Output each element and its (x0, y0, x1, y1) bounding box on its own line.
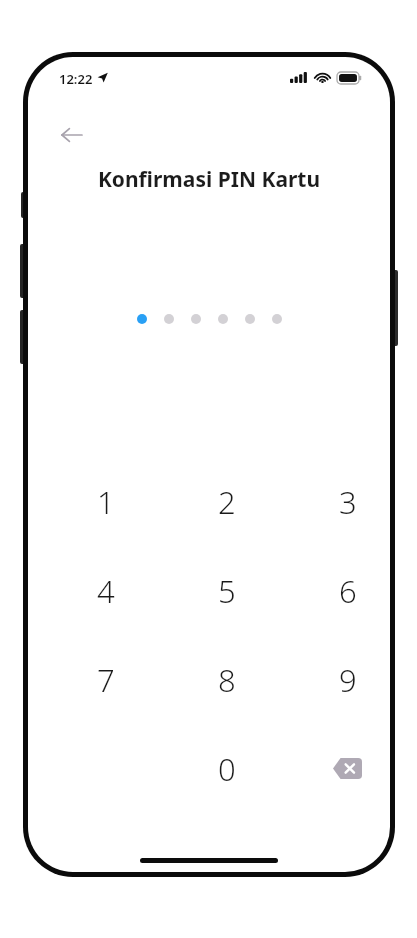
staticText: 9 (339, 659, 357, 701)
staticText: 0 (218, 748, 236, 790)
button[interactable]: Backspace (287, 724, 390, 813)
button[interactable]: 9 (287, 635, 390, 724)
staticText: 8 (218, 659, 236, 701)
button[interactable]: 6 (287, 546, 390, 635)
button[interactable]: 0 (166, 724, 287, 813)
staticText: 3 (339, 481, 357, 523)
staticText: 5 (218, 570, 236, 612)
staticText: 12:22 (59, 70, 93, 88)
button[interactable]: 2 (166, 457, 287, 546)
button[interactable]: 5 (166, 546, 287, 635)
staticText: 1 (97, 481, 115, 523)
button[interactable]: 3 (287, 457, 390, 546)
button[interactable]: 4 (46, 546, 166, 635)
button[interactable]: 8 (166, 635, 287, 724)
staticText: 7 (97, 659, 115, 701)
staticText: 2 (218, 481, 236, 523)
staticText: Konfirmasi PIN Kartu (28, 165, 390, 194)
button[interactable]: Back (50, 113, 94, 157)
staticText: 4 (97, 570, 115, 612)
button[interactable]: 1 (46, 457, 166, 546)
staticText: 6 (339, 570, 357, 612)
button[interactable]: 7 (46, 635, 166, 724)
